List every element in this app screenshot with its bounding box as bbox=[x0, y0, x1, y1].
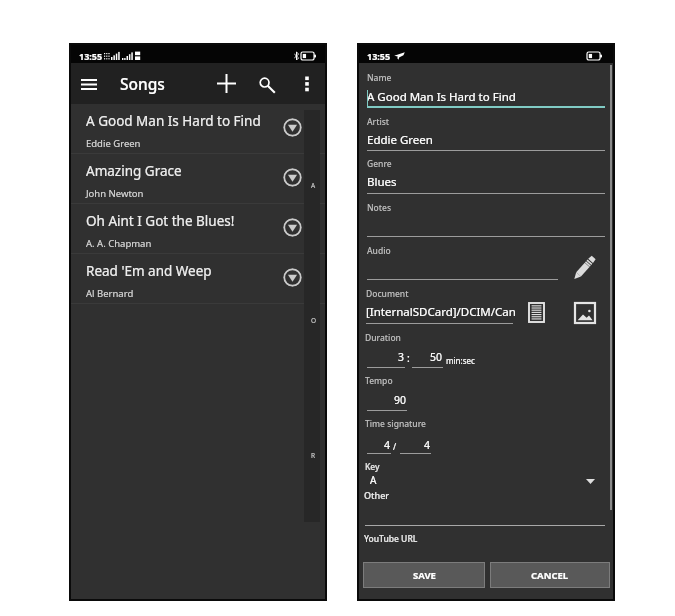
staticText: [InternalSDCard]/DCIM/Can bbox=[366, 304, 516, 320]
button[interactable]: Choose document bbox=[523, 299, 549, 325]
staticText: Eddie Green bbox=[86, 137, 141, 150]
staticText: Amazing Grace bbox=[86, 162, 286, 180]
button[interactable]: Read 'Em and Weep bbox=[71, 254, 325, 304]
staticText: Document bbox=[366, 288, 409, 300]
staticText: Eddie Green bbox=[367, 132, 433, 148]
staticText: A bbox=[311, 181, 316, 190]
staticText: 4 bbox=[400, 438, 430, 452]
button[interactable]: Key selector bbox=[359, 470, 613, 488]
staticText: A. A. Chapman bbox=[86, 237, 152, 250]
button[interactable]: Expand bbox=[283, 218, 302, 237]
staticText: SAVE bbox=[413, 569, 436, 582]
staticText: 90 bbox=[367, 393, 406, 407]
staticText: Songs bbox=[120, 73, 165, 94]
button[interactable]: Expand bbox=[283, 268, 302, 287]
staticText: / bbox=[393, 441, 397, 453]
staticText: YouTube URL bbox=[364, 533, 418, 545]
staticText: R bbox=[311, 451, 316, 460]
staticText: Name bbox=[367, 72, 392, 84]
staticText: Duration bbox=[365, 332, 401, 344]
staticText: Key bbox=[365, 461, 380, 473]
staticText: Tempo bbox=[365, 375, 393, 387]
staticText: 13:55 bbox=[79, 50, 103, 62]
button[interactable]: Choose image bbox=[572, 300, 598, 326]
staticText: 4 bbox=[367, 438, 390, 452]
button[interactable]: Oh Aint I Got the Blues! bbox=[71, 204, 325, 254]
staticText: Artist bbox=[367, 116, 390, 128]
staticText: 50 bbox=[412, 350, 442, 364]
staticText: A bbox=[370, 473, 377, 487]
staticText: 13:55 bbox=[367, 50, 391, 62]
staticText: CANCEL bbox=[531, 569, 569, 582]
button[interactable]: Add song bbox=[208, 65, 244, 101]
staticText: Oh Aint I Got the Blues! bbox=[86, 212, 286, 230]
staticText: Time signature bbox=[365, 418, 426, 430]
staticText: O bbox=[311, 316, 317, 325]
button[interactable]: Expand bbox=[283, 168, 302, 187]
staticText: Read 'Em and Weep bbox=[86, 262, 286, 280]
button[interactable]: Search bbox=[249, 67, 285, 103]
button[interactable]: Record audio bbox=[569, 253, 599, 283]
staticText: Audio bbox=[367, 245, 391, 257]
staticText: Al Bernard bbox=[86, 287, 134, 300]
button[interactable]: More options bbox=[293, 70, 321, 98]
button[interactable]: CANCEL bbox=[491, 563, 609, 587]
staticText: Blues bbox=[367, 174, 397, 190]
staticText: Genre bbox=[367, 158, 392, 170]
button[interactable]: Amazing Grace bbox=[71, 154, 325, 204]
button[interactable]: Expand bbox=[283, 118, 302, 137]
staticText: John Newton bbox=[86, 187, 144, 200]
staticText: A Good Man Is Hard to Find bbox=[367, 89, 516, 105]
staticText: A Good Man Is Hard to Find bbox=[86, 112, 286, 130]
staticText: Notes bbox=[367, 202, 392, 214]
button[interactable]: Navigation menu bbox=[71, 66, 107, 102]
button[interactable]: SAVE bbox=[364, 563, 484, 587]
button[interactable]: A Good Man Is Hard to Find bbox=[71, 104, 325, 154]
staticText: Other bbox=[364, 489, 390, 501]
staticText: 3 bbox=[367, 350, 404, 364]
staticText: : bbox=[407, 351, 410, 365]
staticText: min:sec bbox=[446, 355, 475, 366]
